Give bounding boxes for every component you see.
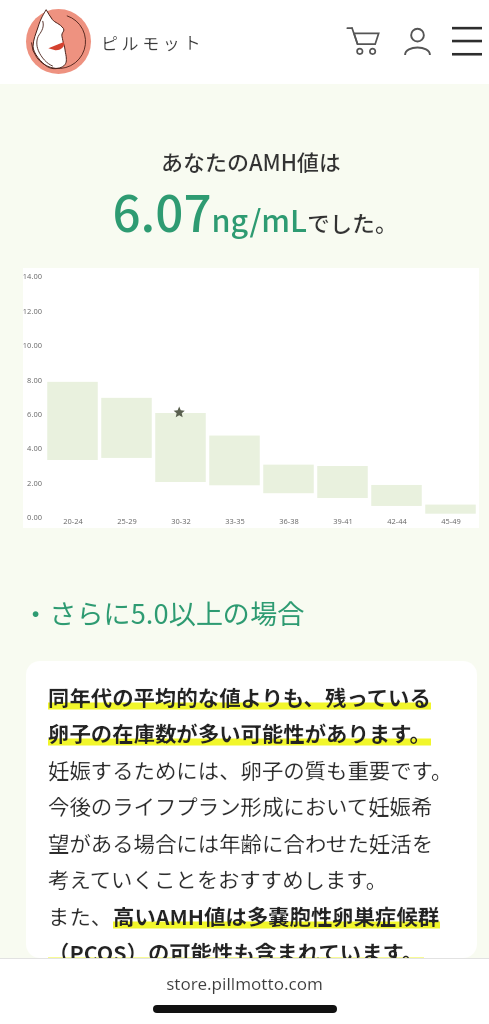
staticText: 考えていくことをおすすめします。 — [48, 863, 388, 894]
staticText: 14.00 — [17, 271, 42, 281]
button[interactable]: Account — [393, 17, 441, 65]
staticText: 望がある場合には年齢に合わせた妊活を — [48, 827, 434, 858]
staticText: （PCOS）の可能性も含まれています。 — [48, 936, 424, 958]
staticText: 妊娠するためには、卵子の質も重要です。 — [48, 754, 453, 785]
staticText: 25-29 — [100, 516, 154, 526]
staticText: 2.00 — [17, 478, 42, 488]
staticText: 20-24 — [46, 516, 100, 526]
staticText: 卵子の在庫数が多い可能性があります。 — [48, 717, 431, 748]
staticText: store.pillmotto.com — [0, 972, 489, 995]
staticText: 10.00 — [17, 340, 42, 350]
staticText: 高いAMH値は多嚢胞性卵巣症候群 — [113, 900, 440, 931]
staticText: ・さらに5.0以上の場合 — [22, 592, 305, 631]
button[interactable]: Menu — [443, 16, 489, 64]
staticText: 33-35 — [208, 516, 262, 526]
staticText: また、 — [48, 900, 113, 931]
staticText: ピルモット — [101, 30, 204, 55]
staticText: 同年代の平均的な値よりも、残っている — [48, 681, 431, 712]
staticText: 8.00 — [17, 375, 42, 385]
staticText: 36-38 — [262, 516, 316, 526]
staticText: 6.00 — [17, 409, 42, 419]
staticText: 今後のライフプラン形成において妊娠希 — [48, 790, 433, 821]
staticText: 39-41 — [316, 516, 370, 526]
staticText: 45-49 — [424, 516, 478, 526]
staticText: あなたのAMH値は — [23, 145, 479, 177]
staticText: 12.00 — [17, 306, 42, 316]
staticText: 30-32 — [154, 516, 208, 526]
staticText: 42-44 — [370, 516, 424, 526]
staticText: 4.00 — [17, 443, 42, 453]
button[interactable]: Cart — [339, 16, 387, 64]
staticText: 0.00 — [17, 512, 42, 522]
staticText: 6.07ng/mLでした。 — [27, 175, 483, 246]
button[interactable]: Pill Motto home — [20, 0, 204, 84]
